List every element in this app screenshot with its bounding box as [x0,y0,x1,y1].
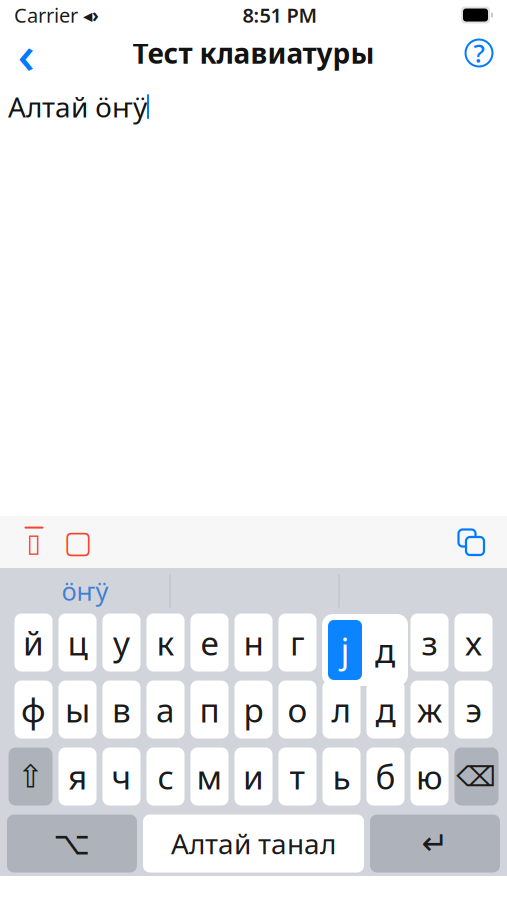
button[interactable]: п [190,680,228,738]
button[interactable]: о [278,680,316,738]
staticText: ю [416,754,443,799]
button[interactable]: öҥÿ [0,568,169,614]
button[interactable]: Back [0,31,52,75]
staticText: о [287,687,307,732]
staticText: ⌥ [53,825,90,862]
button[interactable]: я [58,747,96,805]
staticText: к [156,620,174,665]
staticText: ь [332,754,350,799]
button[interactable]: в [102,680,140,738]
button[interactable]: г [278,613,316,671]
button[interactable]: Return [370,814,500,872]
button[interactable]: ц [58,613,96,671]
button[interactable]: ж [410,680,448,738]
staticText: j [340,627,349,673]
staticText: ц [67,620,87,665]
button[interactable]: н [234,613,272,671]
button[interactable]: л [322,680,360,738]
button[interactable]: у [102,613,140,671]
staticText: й [23,620,44,665]
button[interactable]: б [366,747,404,805]
button[interactable]: з [410,613,448,671]
staticText: Алтай öҥÿ [8,88,147,125]
staticText: ◂› [83,3,99,27]
staticText: ф [21,687,46,732]
button[interactable]: Delete [12,520,56,564]
staticText: б [375,754,395,799]
staticText: с [157,754,173,799]
staticText: 8:51 PM [242,2,317,28]
button[interactable]: ю [410,747,448,805]
staticText: ⇧ [17,758,44,795]
button[interactable]: Copy [447,520,495,564]
button[interactable]: Paste [56,520,100,564]
staticText: ? [473,36,484,70]
staticText: ы [65,687,90,732]
staticText: е [200,620,218,665]
staticText: м [196,754,222,799]
button[interactable]: й [14,613,52,671]
button[interactable]: ы [58,680,96,738]
button[interactable]: и [234,747,272,805]
button[interactable]: х [454,613,492,671]
staticText: г [290,620,305,665]
button[interactable]: р [234,680,272,738]
staticText: р [243,687,263,732]
staticText: ▢ [63,525,92,559]
staticText: я [68,754,87,799]
button[interactable]: Next keyboard [7,814,137,872]
button[interactable]: э [454,680,492,738]
button[interactable]: д [366,680,404,738]
staticText: ▯ [27,529,41,557]
button[interactable]: м [190,747,228,805]
staticText: э [465,687,481,732]
staticText: д [375,628,395,672]
staticText: Carrier [14,2,78,28]
staticText: д [375,687,395,732]
staticText: х [465,620,482,665]
staticText: в [112,687,131,732]
button[interactable]: к [146,613,184,671]
staticText: и [243,754,264,799]
staticText: Тест клавиатуры [132,34,374,72]
button[interactable]: ь [322,747,360,805]
button[interactable]: т [278,747,316,805]
button[interactable]: ч [102,747,140,805]
button[interactable]: Shift [8,747,52,805]
button[interactable]: Алтай танал [143,814,364,872]
staticText: ‹ [17,18,34,88]
button[interactable]: Backspace [454,747,498,805]
button[interactable]: ф [14,680,52,738]
staticText: ж [417,687,442,732]
staticText: ч [111,754,131,799]
staticText: у [113,620,130,665]
staticText: ↵ [421,825,448,862]
staticText: т [289,754,305,799]
staticText: п [199,687,219,732]
button[interactable]: Help [451,31,507,75]
staticText: з [421,620,437,665]
staticText: Алтай танал [171,825,336,862]
button[interactable]: с [146,747,184,805]
staticText: л [331,687,351,732]
staticText: ⌫ [456,761,496,792]
staticText: öҥÿ [61,574,108,608]
staticText: а [156,687,175,732]
staticText: н [243,620,263,665]
button[interactable]: а [146,680,184,738]
button[interactable]: е [190,613,228,671]
